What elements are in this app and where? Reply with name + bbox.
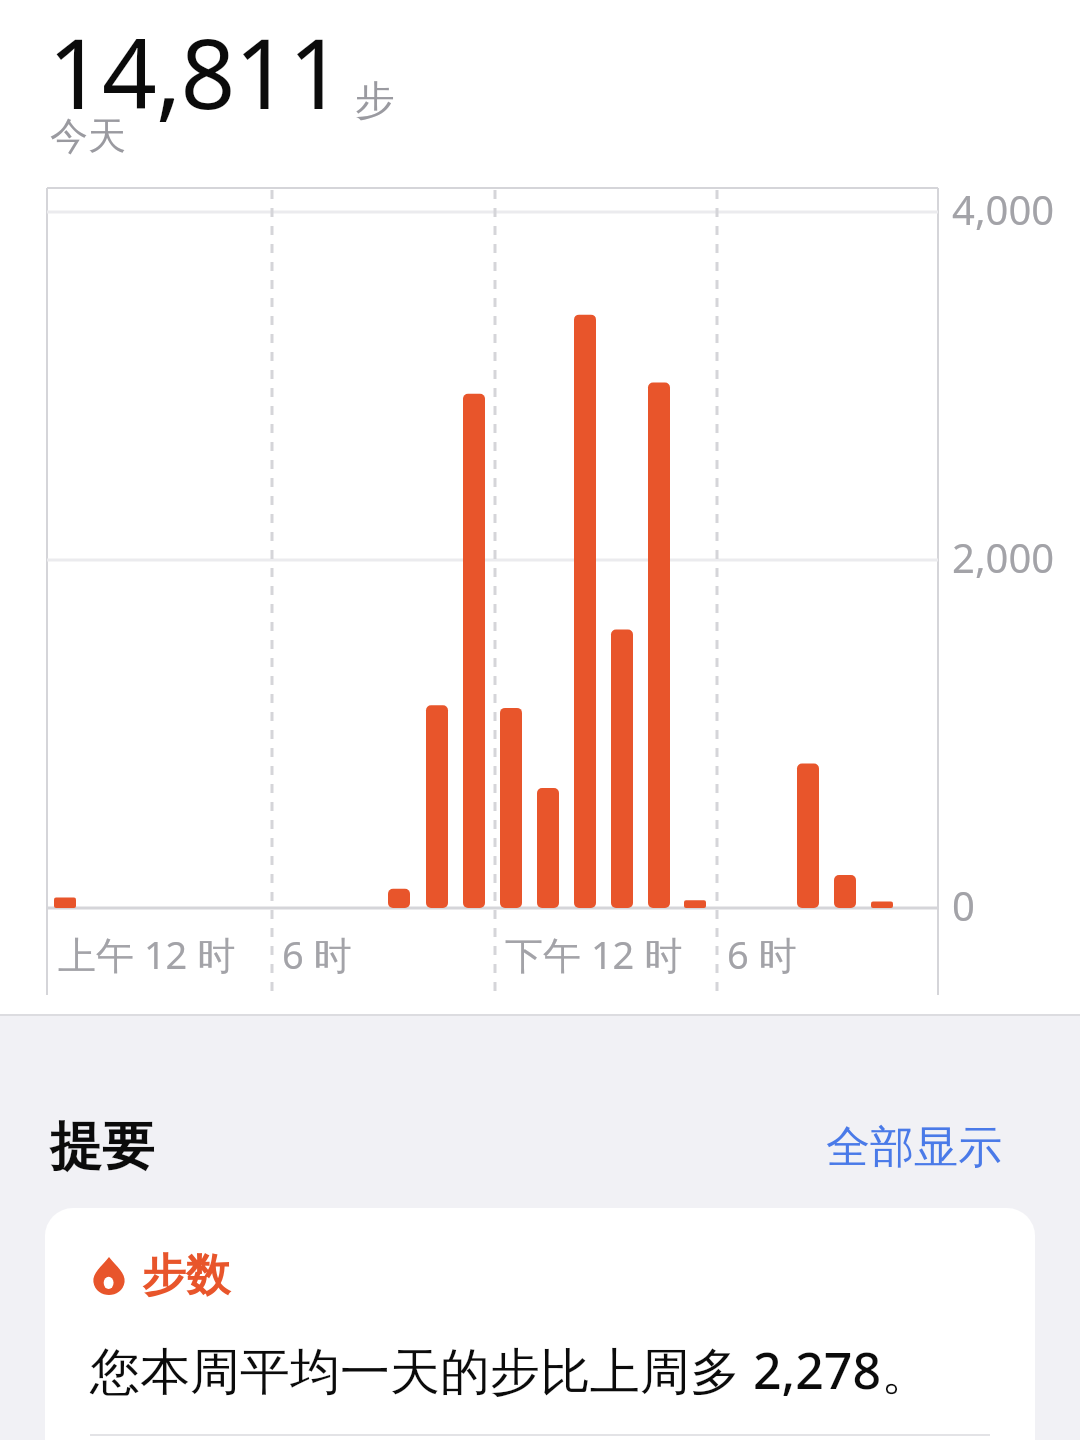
- button[interactable]: 全部显示: [818, 1114, 1010, 1181]
- staticText: 上午 12 时: [58, 928, 236, 980]
- staticText: 6 时: [727, 928, 797, 980]
- staticText: 提要: [50, 1114, 154, 1180]
- staticText: 下午 12 时: [505, 928, 683, 980]
- staticText: 全部显示: [826, 1120, 1002, 1175]
- staticText: 0: [952, 878, 975, 932]
- staticText: 今天: [50, 112, 126, 160]
- staticText: 您本周平均一天的步比上周多 2,278。: [90, 1336, 932, 1404]
- staticText: 2,000: [952, 530, 1055, 584]
- staticText: 14,811: [48, 6, 343, 137]
- other: 步数: [90, 1257, 128, 1295]
- staticText: 4,000: [952, 182, 1055, 236]
- button[interactable]: 步数: [45, 1208, 1035, 1440]
- staticText: 6 时: [282, 928, 352, 980]
- staticText: 步数: [142, 1248, 230, 1303]
- staticText: 步: [355, 75, 395, 125]
